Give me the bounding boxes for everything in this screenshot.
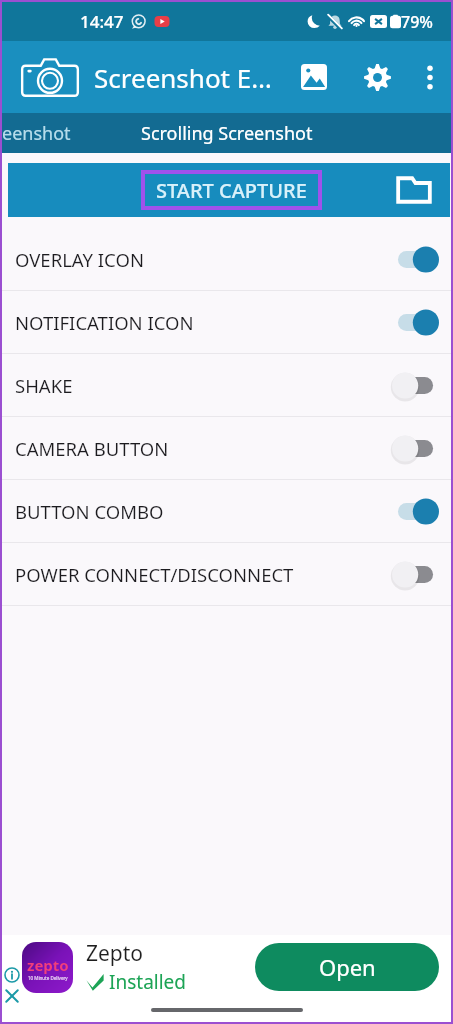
button[interactable]: Close ad	[4, 988, 20, 1004]
button[interactable]: BUTTON COMBO	[2, 480, 451, 542]
button[interactable]: Ad info	[4, 967, 20, 983]
staticText: 79%	[401, 11, 433, 33]
button[interactable]: Open folder	[378, 163, 450, 217]
button[interactable]: START CAPTURE	[8, 163, 378, 217]
staticText: CAMERA BUTTON	[15, 436, 169, 461]
button[interactable]: Open	[255, 943, 439, 991]
staticText: Scrolling Screenshot	[141, 121, 313, 146]
button[interactable]: POWER CONNECT/DISCONNECT	[2, 543, 451, 605]
button[interactable]: SHAKE	[2, 354, 451, 416]
staticText: Installed	[109, 969, 187, 995]
button[interactable]: OVERLAY ICON	[2, 228, 451, 290]
staticText: POWER CONNECT/DISCONNECT	[15, 562, 294, 587]
staticText: zepto	[27, 955, 69, 975]
staticText: SHAKE	[15, 373, 73, 398]
staticText: Screenshot E…	[94, 60, 272, 95]
button[interactable]: App icon	[18, 49, 82, 105]
staticText: Zepto	[86, 939, 144, 968]
button[interactable]: eenshot	[2, 113, 76, 153]
button[interactable]: More options	[411, 58, 449, 96]
staticText: NOTIFICATION ICON	[15, 310, 194, 335]
staticText: BUTTON COMBO	[15, 499, 164, 524]
staticText: eenshot	[2, 121, 71, 146]
staticText: Open	[319, 952, 376, 982]
staticText: 10 Minute Delivery	[28, 975, 68, 981]
button[interactable]: CAMERA BUTTON	[2, 417, 451, 479]
staticText: START CAPTURE	[156, 177, 307, 204]
staticText: OVERLAY ICON	[15, 247, 144, 272]
button[interactable]: NOTIFICATION ICON	[2, 291, 451, 353]
button[interactable]: Gallery	[291, 54, 337, 100]
staticText: 14:47	[80, 10, 124, 33]
button[interactable]: Scrolling Screenshot	[76, 113, 377, 153]
button[interactable]: Settings	[354, 54, 400, 100]
